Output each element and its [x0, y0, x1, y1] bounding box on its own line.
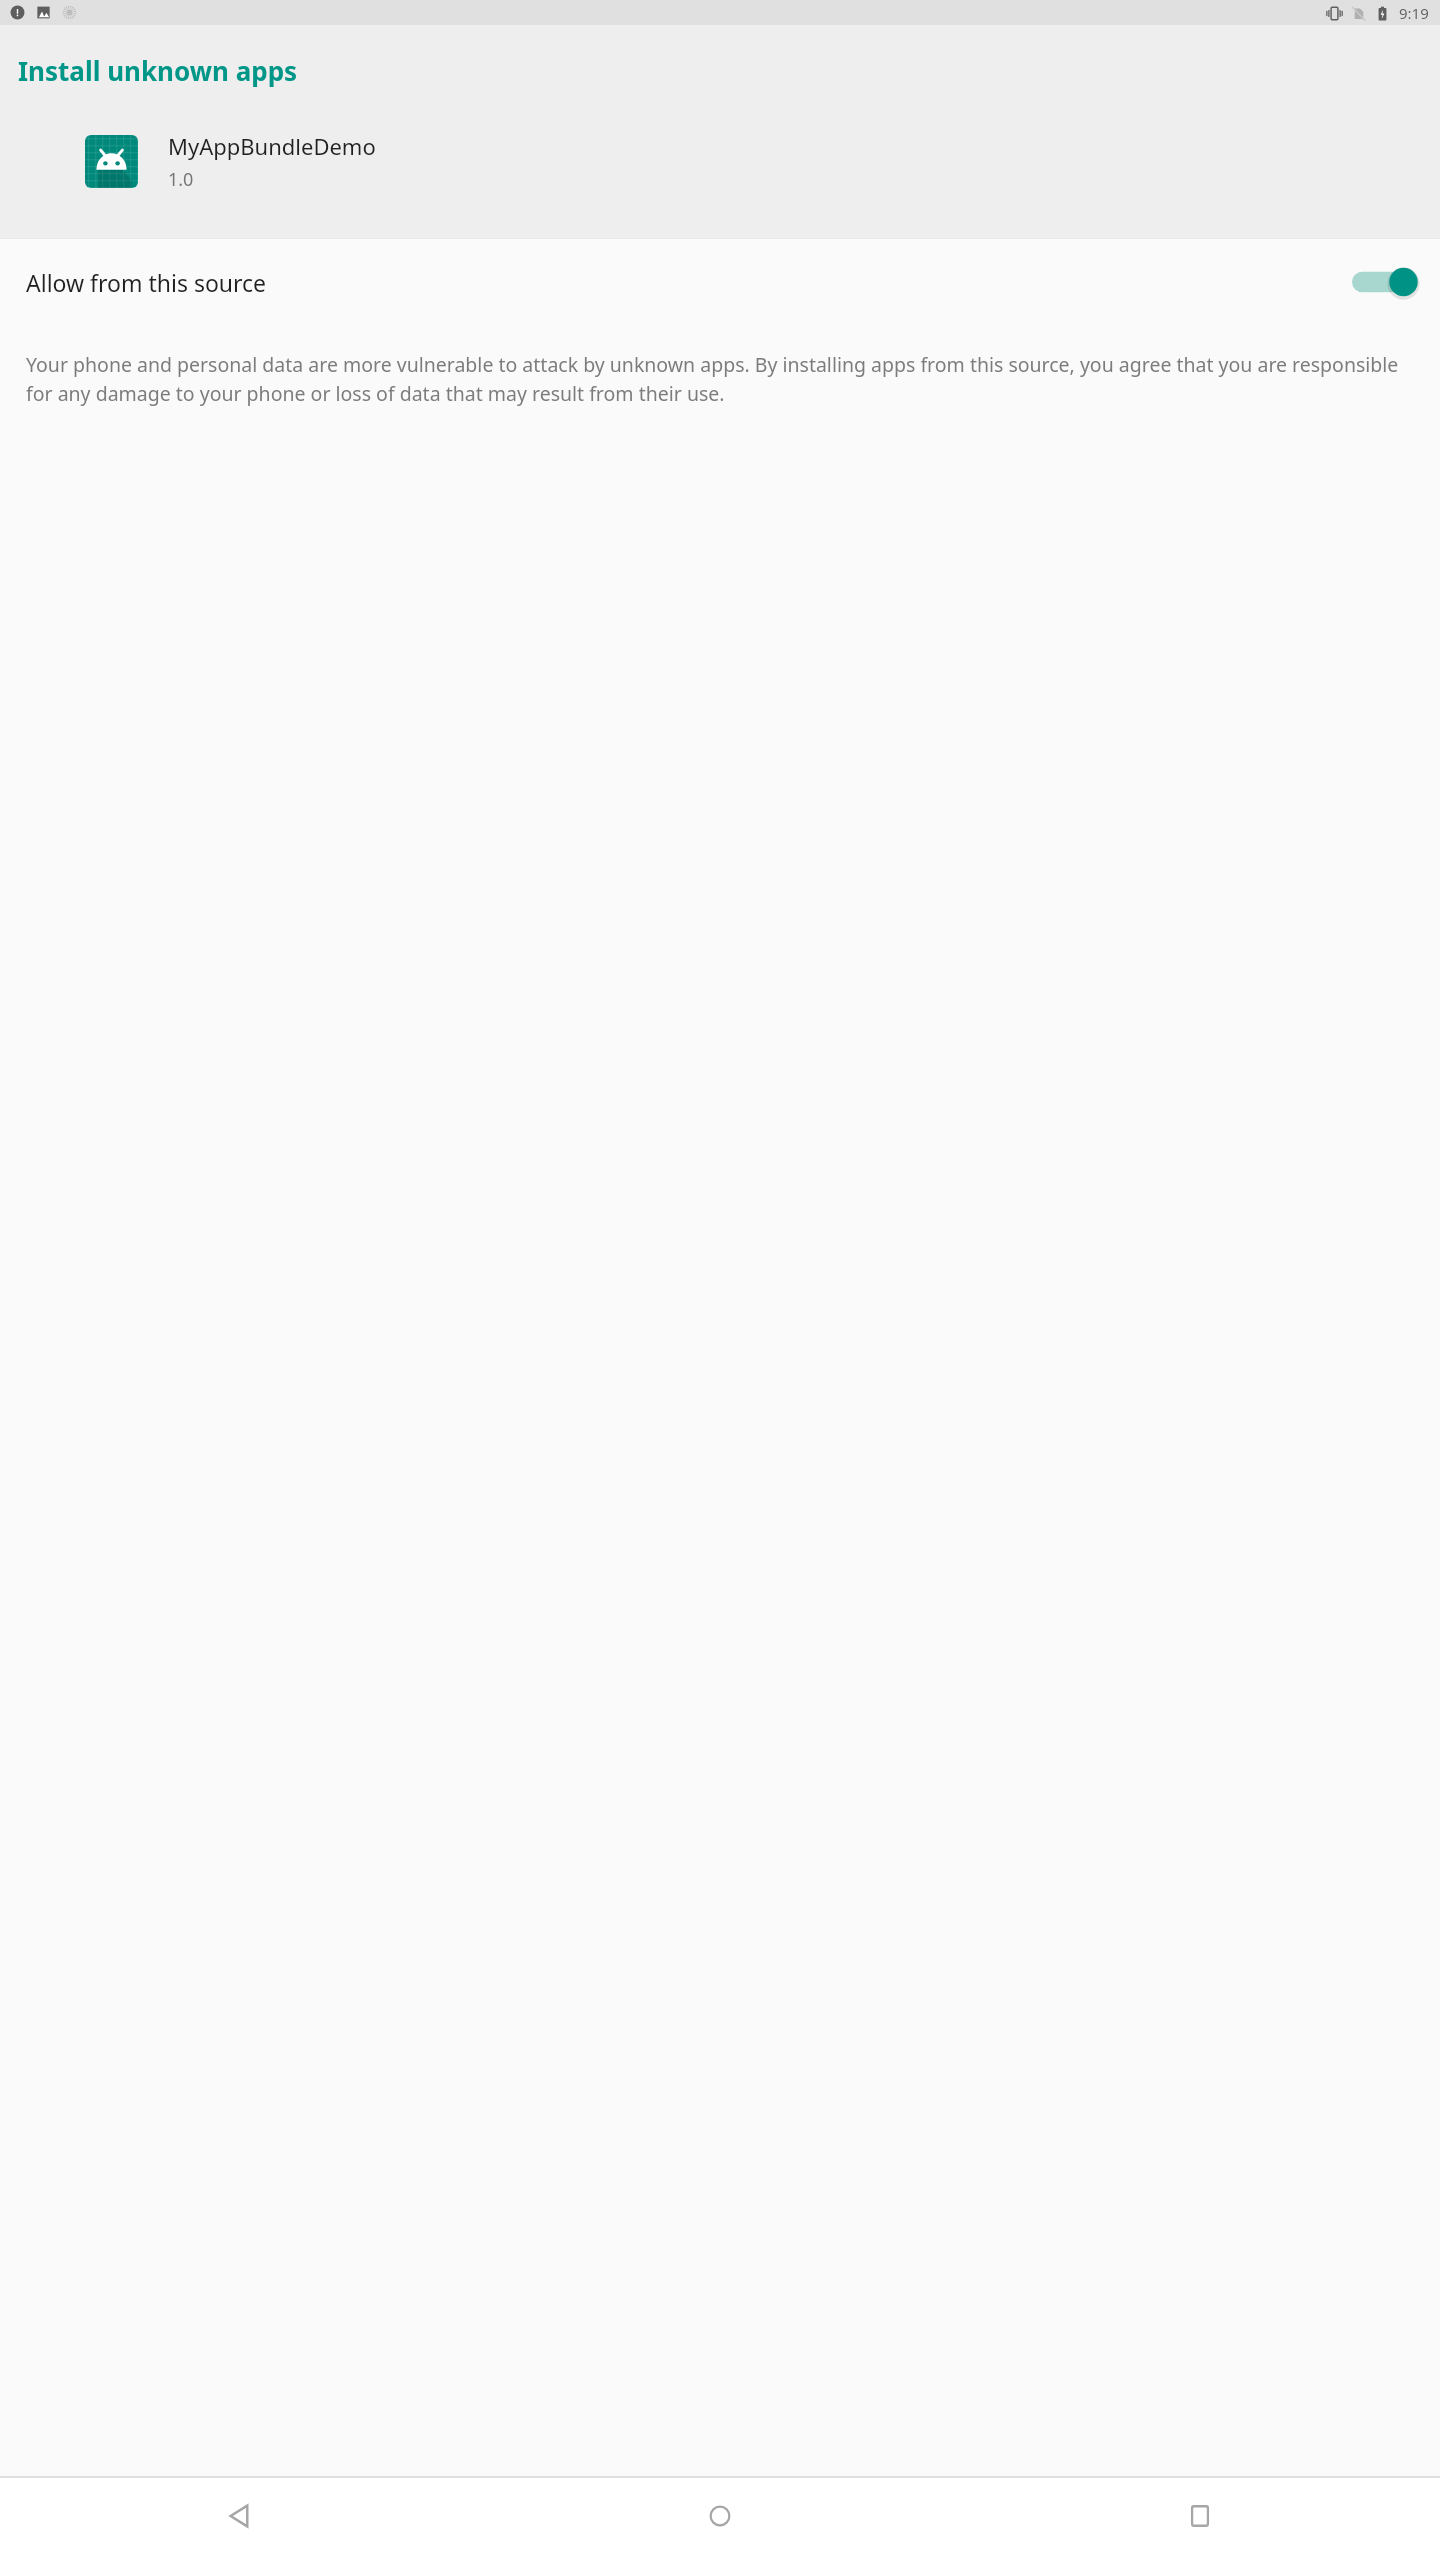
button[interactable]: Allow from this source	[0, 239, 1440, 325]
button[interactable]: Recent apps	[960, 2478, 1440, 2560]
staticText: MyAppBundleDemo	[168, 131, 376, 161]
staticText: Allow from this source	[26, 267, 1352, 298]
staticText: Your phone and personal data are more vu…	[26, 351, 1422, 406]
staticText: 1.0	[168, 167, 194, 192]
staticText: 9:19	[1399, 3, 1429, 23]
staticText: Install unknown apps	[18, 53, 298, 88]
button[interactable]: Back	[0, 2478, 480, 2560]
button[interactable]: Home	[480, 2478, 960, 2560]
button[interactable]: Allow from this source toggle, on	[1352, 263, 1414, 301]
